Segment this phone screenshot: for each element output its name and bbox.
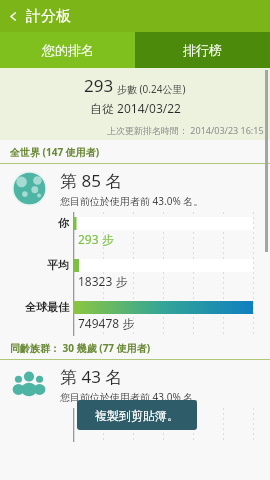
staticText: 第 43 名 [60, 365, 123, 388]
staticText: 平均 [47, 258, 69, 272]
staticText: 自從 2014/03/22 [90, 100, 181, 116]
staticText: 計分板 [26, 7, 71, 26]
staticText: 293 [84, 74, 114, 97]
staticText: 293 步 [78, 231, 114, 247]
staticText: 您目前位於使用者前 43.0% 名。 [60, 194, 204, 208]
staticText: 749478 步 [78, 315, 135, 331]
staticText: 你 [58, 216, 69, 230]
staticText: 全世界 (147 使用者) [10, 145, 100, 159]
staticText: 您目前位於使用者前 43.0% 名。 [60, 390, 204, 404]
staticText: 上次更新排名時間： 2014/03/23 16:15 [107, 124, 264, 136]
other: Global ranking [13, 172, 46, 205]
staticText: 全球最佳 [25, 300, 69, 314]
button[interactable]: 您的排名 [0, 32, 135, 68]
staticText: 同齡族群： 30 幾歲 (77 使用者) [10, 341, 151, 355]
button[interactable]: 排行榜 [135, 32, 270, 68]
staticText: 步數 (0.24公里) [117, 82, 186, 96]
staticText: 第 85 名 [60, 169, 123, 192]
staticText: 複製到剪貼簿。 [95, 408, 179, 423]
other: Age group ranking [12, 367, 46, 401]
button[interactable]: Age group ranking [0, 360, 270, 408]
staticText: 排行榜 [183, 42, 222, 58]
button[interactable]: Back [0, 0, 26, 32]
staticText: 您的排名 [42, 42, 94, 58]
staticText: 18323 步 [78, 273, 128, 289]
button[interactable]: Global ranking [0, 164, 270, 212]
